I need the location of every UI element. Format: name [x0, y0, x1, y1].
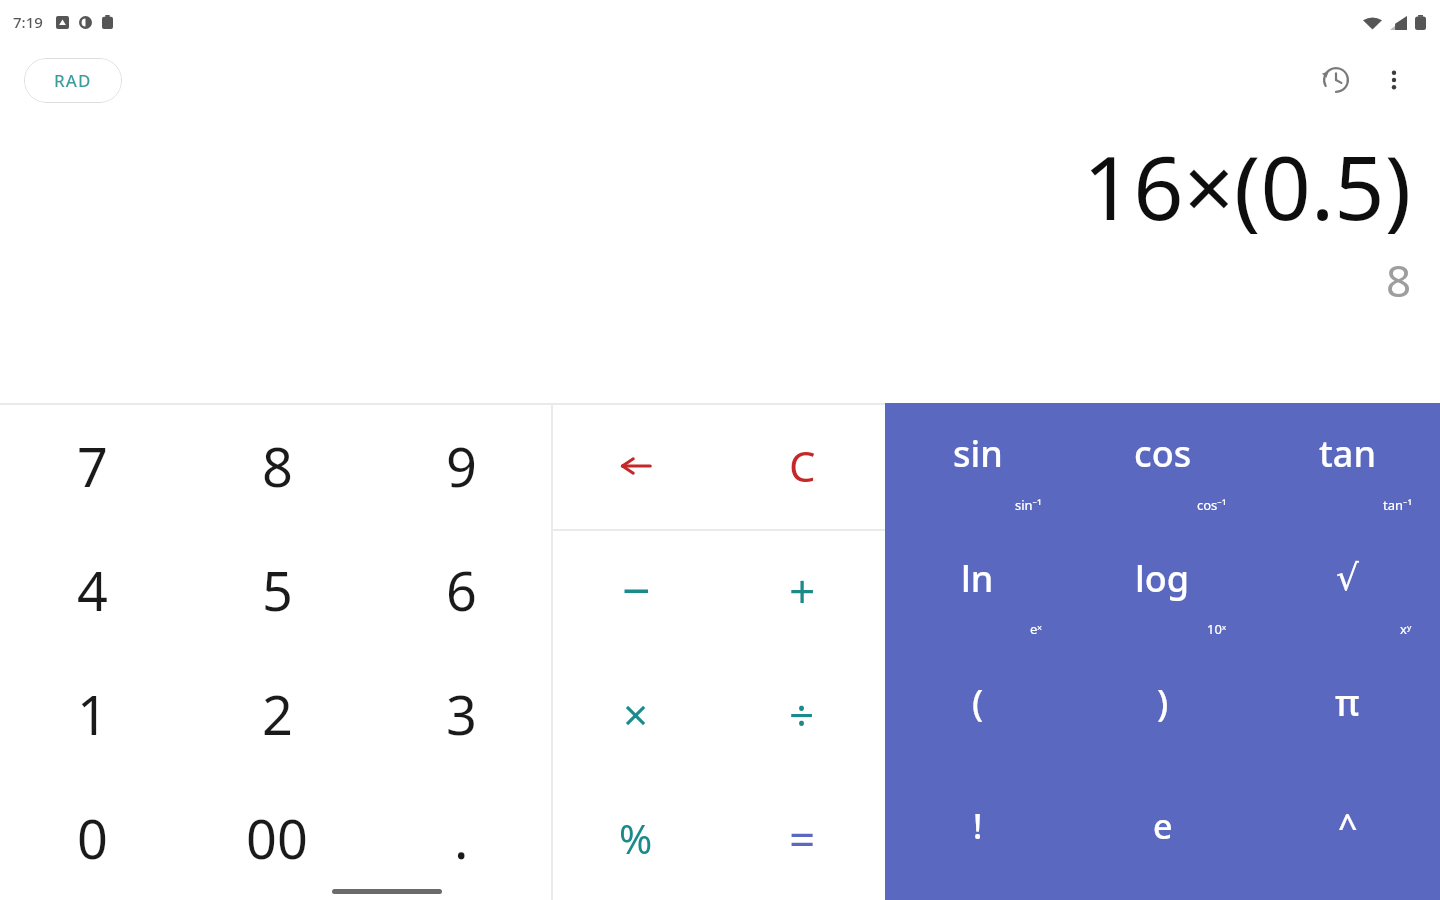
staticText: ^: [1338, 803, 1358, 849]
staticText: RAD: [54, 69, 92, 92]
staticText: 16×(0.5): [1083, 126, 1412, 246]
button[interactable]: %: [553, 776, 719, 900]
button[interactable]: 0: [0, 776, 185, 900]
staticText: xʸ: [1400, 620, 1412, 638]
button[interactable]: ln: [885, 528, 1070, 652]
button[interactable]: +: [719, 528, 885, 652]
staticText: 2: [262, 677, 293, 751]
button[interactable]: .: [369, 776, 553, 900]
staticText: ): [1157, 678, 1169, 727]
button[interactable]: More options: [1368, 54, 1420, 106]
staticText: sin: [953, 429, 1003, 478]
staticText: 0: [77, 801, 108, 875]
staticText: 6: [446, 553, 477, 627]
staticText: ×: [623, 684, 649, 744]
button[interactable]: ÷: [719, 652, 885, 776]
button[interactable]: √: [1255, 528, 1440, 652]
button[interactable]: ^: [1255, 776, 1440, 900]
button[interactable]: 7: [0, 403, 185, 528]
staticText: 8: [1386, 250, 1412, 310]
button[interactable]: Backspace: [553, 403, 719, 528]
button[interactable]: e: [1070, 776, 1255, 900]
staticText: eˣ: [1030, 620, 1042, 638]
button[interactable]: log: [1070, 528, 1255, 652]
button[interactable]: 6: [369, 528, 553, 652]
staticText: 5: [262, 553, 293, 627]
button[interactable]: =: [719, 776, 885, 900]
staticText: −: [622, 556, 651, 624]
staticText: log: [1135, 554, 1190, 603]
staticText: =: [789, 807, 816, 870]
staticText: ÷: [789, 684, 815, 744]
staticText: 1: [77, 677, 108, 751]
button[interactable]: 9: [369, 403, 553, 528]
staticText: sin⁻¹: [1015, 496, 1042, 514]
staticText: +: [789, 559, 816, 622]
button[interactable]: RAD: [24, 58, 122, 103]
button[interactable]: ): [1070, 652, 1255, 776]
staticText: tan: [1319, 429, 1376, 478]
staticText: C: [789, 437, 816, 494]
button[interactable]: !: [885, 776, 1070, 900]
staticText: 00: [246, 801, 308, 875]
staticText: (: [972, 678, 984, 727]
staticText: 7:19: [13, 12, 43, 32]
button[interactable]: sin: [885, 403, 1070, 528]
staticText: tan⁻¹: [1383, 496, 1412, 514]
button[interactable]: 4: [0, 528, 185, 652]
staticText: √: [1336, 557, 1359, 599]
button[interactable]: C: [719, 403, 885, 528]
staticText: 7: [77, 429, 108, 503]
staticText: π: [1335, 678, 1360, 727]
staticText: e: [1153, 803, 1173, 849]
staticText: 8: [262, 429, 293, 503]
staticText: 9: [446, 429, 477, 503]
button[interactable]: 5: [185, 528, 369, 652]
button[interactable]: 8: [185, 403, 369, 528]
button[interactable]: 1: [0, 652, 185, 776]
button[interactable]: (: [885, 652, 1070, 776]
staticText: !: [973, 803, 983, 849]
button[interactable]: 3: [369, 652, 553, 776]
button[interactable]: ×: [553, 652, 719, 776]
staticText: 3: [446, 677, 477, 751]
button[interactable]: −: [553, 528, 719, 652]
staticText: .: [454, 801, 469, 875]
button[interactable]: 2: [185, 652, 369, 776]
button[interactable]: 00: [185, 776, 369, 900]
staticText: ln: [961, 554, 994, 603]
button[interactable]: cos: [1070, 403, 1255, 528]
staticText: 4: [77, 553, 108, 627]
staticText: 10ˣ: [1207, 620, 1227, 638]
button[interactable]: π: [1255, 652, 1440, 776]
staticText: %: [619, 811, 653, 865]
button[interactable]: tan: [1255, 403, 1440, 528]
staticText: cos: [1134, 429, 1192, 478]
button[interactable]: History: [1308, 52, 1364, 108]
staticText: cos⁻¹: [1197, 496, 1227, 514]
